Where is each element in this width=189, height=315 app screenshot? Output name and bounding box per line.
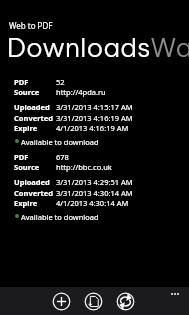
button[interactable]: Refresh	[113, 289, 137, 313]
staticText: PDF	[14, 152, 29, 162]
staticText: 678	[56, 152, 69, 162]
staticText: Wa	[150, 30, 189, 64]
button[interactable]: Save as document	[81, 289, 105, 313]
staticText: http://bbc.co.uk	[56, 162, 112, 172]
staticText: Uploaded	[14, 177, 50, 187]
staticText: Available to download	[21, 212, 99, 222]
staticText: http://4pda.ru	[56, 87, 106, 97]
staticText: Uploaded	[14, 102, 50, 112]
staticText: 3/31/2013 4:16:19 AM	[56, 113, 133, 123]
staticText: Converted	[14, 113, 53, 123]
button[interactable]: PDF	[0, 152, 189, 222]
staticText: 3/31/2013 4:29:51 AM	[56, 177, 133, 187]
button[interactable]: Wa	[150, 30, 189, 64]
button[interactable]: More options	[169, 291, 181, 297]
button[interactable]: Add	[49, 289, 73, 313]
button[interactable]: Downloads	[7, 30, 151, 64]
staticText: Source	[14, 162, 40, 172]
staticText: 4/1/2013 4:16:19 AM	[56, 123, 129, 133]
staticText: Web to PDF	[9, 20, 53, 31]
staticText: Downloads	[7, 30, 151, 64]
staticText: Available to download	[21, 137, 99, 147]
staticText: Source	[14, 87, 40, 97]
staticText: 52	[56, 77, 65, 87]
staticText: 3/31/2013 4:30:14 AM	[56, 188, 133, 198]
button[interactable]: PDF	[0, 77, 189, 147]
staticText: Expire	[14, 123, 38, 133]
staticText: Expire	[14, 198, 38, 208]
staticText: PDF	[14, 77, 29, 87]
staticText: Converted	[14, 188, 53, 198]
staticText: 3/31/2013 4:15:17 AM	[56, 102, 133, 112]
staticText: 4/1/2013 4:30:14 AM	[56, 198, 129, 208]
